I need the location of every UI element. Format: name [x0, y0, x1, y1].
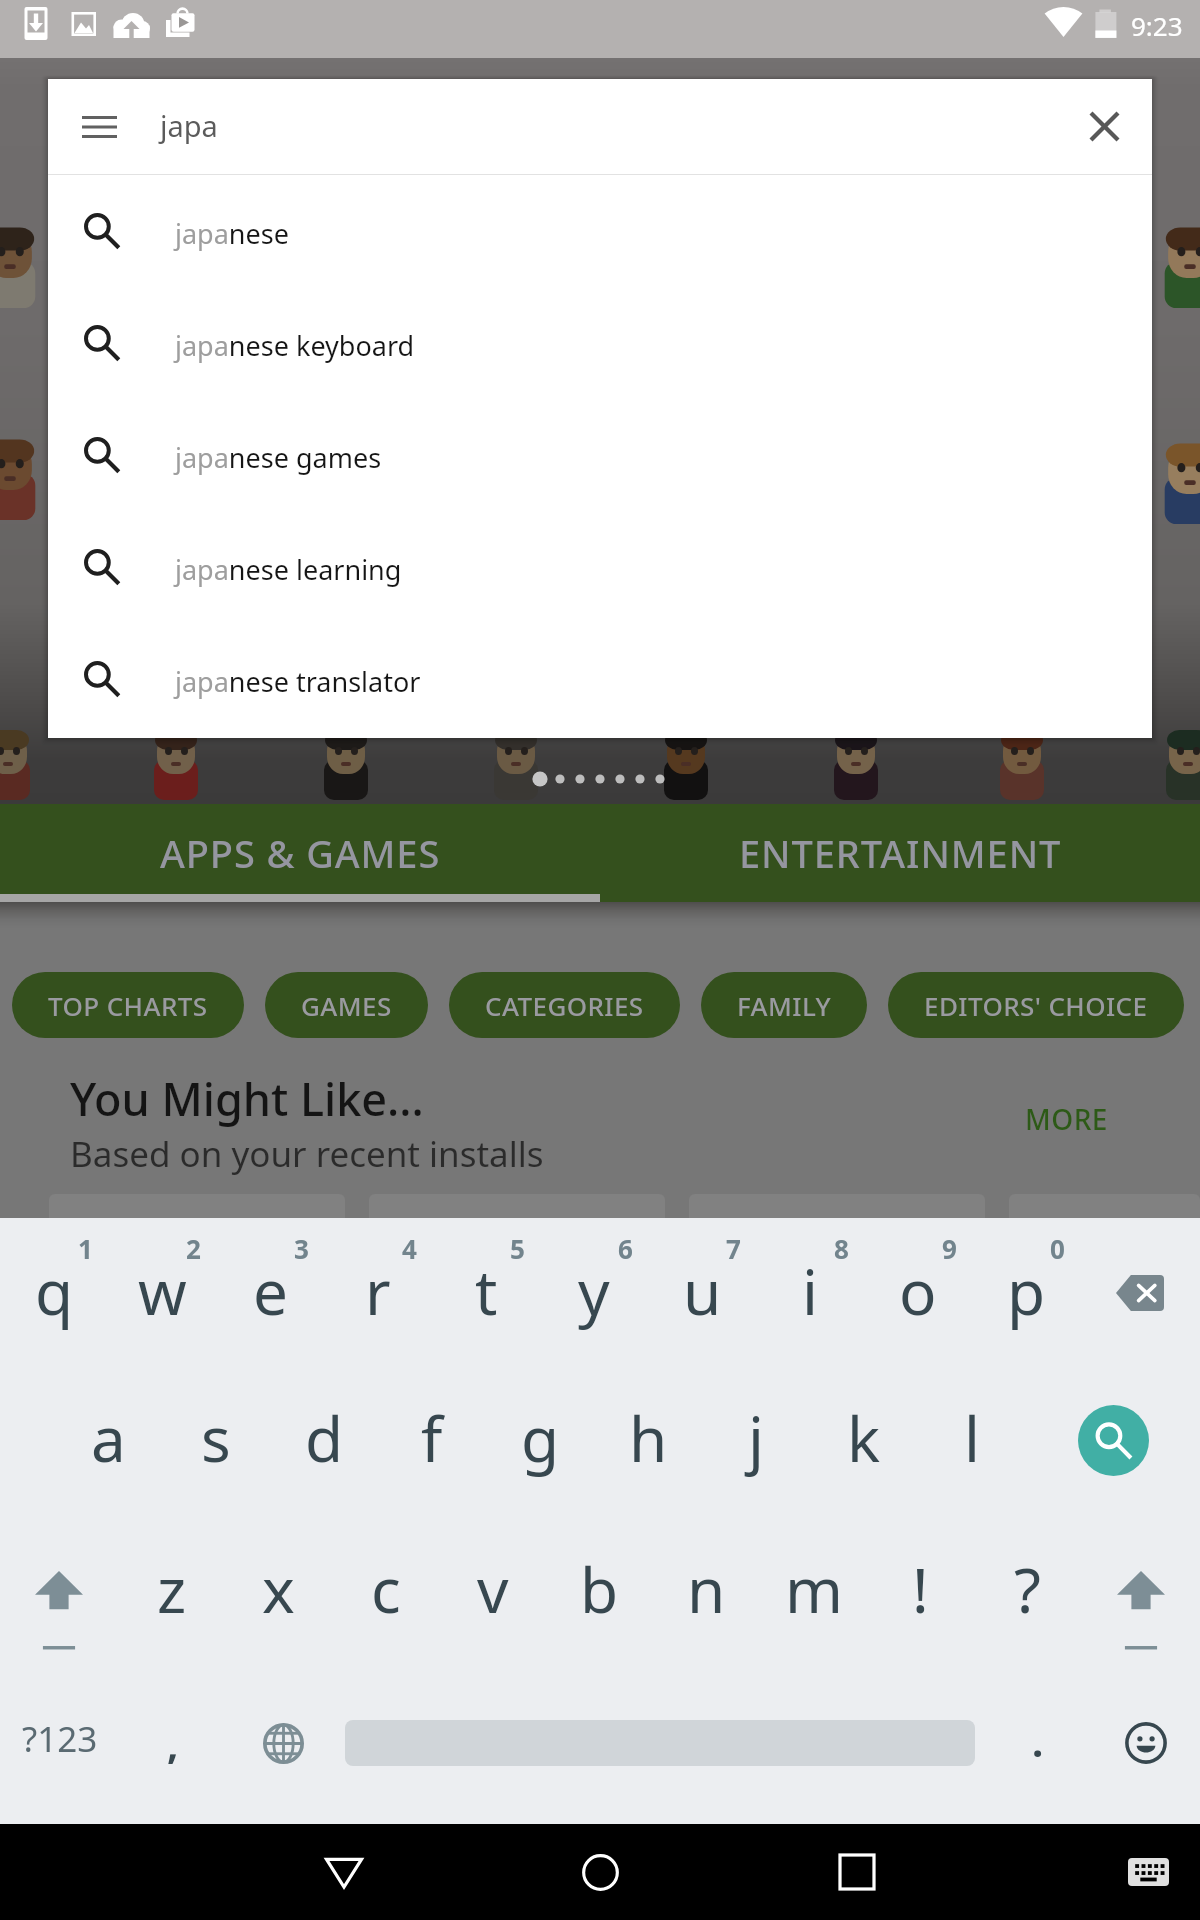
- staticText: ?: [1014, 1547, 1041, 1631]
- staticText: !: [912, 1547, 929, 1631]
- staticText: 9:23: [1131, 8, 1183, 43]
- button[interactable]: c: [332, 1514, 439, 1662]
- button[interactable]: Search: [1026, 1366, 1200, 1514]
- button[interactable]: Clear search: [1057, 79, 1152, 174]
- button[interactable]: v: [439, 1514, 546, 1662]
- button[interactable]: j: [702, 1366, 810, 1514]
- button[interactable]: Open navigation menu: [48, 79, 151, 174]
- button[interactable]: ?123: [0, 1662, 120, 1824]
- button[interactable]: EDITORS' CHOICE: [888, 972, 1184, 1038]
- staticText: m: [785, 1547, 843, 1631]
- staticText: v: [477, 1547, 509, 1631]
- button[interactable]: Change language: [226, 1662, 340, 1824]
- staticText: You Might Like...: [70, 1068, 424, 1129]
- staticText: Based on your recent installs: [70, 1130, 544, 1178]
- button[interactable]: 5: [432, 1218, 540, 1366]
- staticText: 3: [294, 1231, 309, 1266]
- staticText: japanese learning: [175, 551, 402, 588]
- button[interactable]: !: [867, 1514, 974, 1662]
- staticText: h: [629, 1396, 668, 1480]
- button[interactable]: japanese: [48, 175, 1152, 287]
- staticText: d: [305, 1396, 344, 1480]
- staticText: TOP CHARTS: [48, 988, 208, 1023]
- button[interactable]: k: [810, 1366, 918, 1514]
- button[interactable]: Shift: [0, 1514, 118, 1662]
- button[interactable]: 6: [540, 1218, 648, 1366]
- button[interactable]: Space: [340, 1662, 980, 1824]
- staticText: c: [371, 1547, 401, 1631]
- button[interactable]: ?: [974, 1514, 1081, 1662]
- button[interactable]: Switch keyboard: [1088, 1824, 1200, 1920]
- staticText: 8: [834, 1231, 849, 1266]
- button[interactable]: z: [118, 1514, 225, 1662]
- staticText: 7: [726, 1231, 741, 1266]
- button[interactable]: ,: [120, 1662, 226, 1824]
- staticText: b: [580, 1547, 619, 1631]
- button[interactable]: s: [162, 1366, 270, 1514]
- button[interactable]: Emoji: [1091, 1662, 1200, 1824]
- button[interactable]: 4: [324, 1218, 432, 1366]
- button[interactable]: 0: [972, 1218, 1080, 1366]
- button[interactable]: 1: [0, 1218, 108, 1366]
- button[interactable]: 8: [756, 1218, 864, 1366]
- button[interactable]: h: [594, 1366, 702, 1514]
- staticText: x: [262, 1547, 295, 1631]
- staticText: a: [91, 1396, 126, 1480]
- button[interactable]: Recent apps: [781, 1824, 933, 1920]
- staticText: APPS & GAMES: [160, 827, 441, 879]
- staticText: 1: [78, 1231, 93, 1266]
- staticText: l: [964, 1396, 980, 1480]
- button[interactable]: l: [918, 1366, 1026, 1514]
- staticText: 9: [942, 1231, 957, 1266]
- button[interactable]: GAMES: [265, 972, 428, 1038]
- staticText: k: [847, 1396, 881, 1480]
- button[interactable]: 2: [108, 1218, 216, 1366]
- staticText: g: [521, 1396, 560, 1480]
- button[interactable]: 3: [216, 1218, 324, 1366]
- staticText: w: [138, 1249, 187, 1333]
- staticText: MORE: [1025, 1100, 1108, 1138]
- button[interactable]: japanese games: [48, 399, 1152, 511]
- staticText: FAMILY: [737, 988, 831, 1023]
- staticText: ?123: [22, 1715, 98, 1763]
- button[interactable]: ENTERTAINMENT: [600, 804, 1200, 902]
- button[interactable]: g: [486, 1366, 594, 1514]
- staticText: p: [1007, 1249, 1046, 1333]
- staticText: j: [748, 1396, 764, 1480]
- button[interactable]: .: [985, 1662, 1091, 1824]
- staticText: q: [35, 1249, 74, 1333]
- button[interactable]: APPS & GAMES: [0, 804, 600, 902]
- staticText: 2: [186, 1231, 201, 1266]
- button[interactable]: f: [378, 1366, 486, 1514]
- staticText: ENTERTAINMENT: [739, 827, 1062, 879]
- button[interactable]: m: [760, 1514, 867, 1662]
- button[interactable]: Home: [524, 1824, 676, 1920]
- button[interactable]: Shift: [1081, 1514, 1200, 1662]
- button[interactable]: japanese translator: [48, 623, 1152, 735]
- button[interactable]: d: [270, 1366, 378, 1514]
- button[interactable]: x: [225, 1514, 332, 1662]
- button[interactable]: a: [54, 1366, 162, 1514]
- staticText: o: [899, 1249, 937, 1333]
- button[interactable]: Backspace: [1080, 1218, 1200, 1366]
- button[interactable]: 7: [648, 1218, 756, 1366]
- button[interactable]: Back: [268, 1824, 420, 1920]
- button[interactable]: japanese learning: [48, 511, 1152, 623]
- button[interactable]: b: [546, 1514, 653, 1662]
- button[interactable]: CATEGORIES: [449, 972, 680, 1038]
- button[interactable]: FAMILY: [701, 972, 867, 1038]
- staticText: y: [578, 1249, 610, 1333]
- staticText: EDITORS' CHOICE: [924, 988, 1148, 1023]
- staticText: i: [802, 1249, 818, 1333]
- button[interactable]: TOP CHARTS: [12, 972, 244, 1038]
- staticText: japanese translator: [175, 663, 421, 700]
- staticText: japanese keyboard: [175, 327, 415, 364]
- staticText: .: [1032, 1714, 1044, 1768]
- button[interactable]: japanese keyboard: [48, 287, 1152, 399]
- button[interactable]: 9: [864, 1218, 972, 1366]
- staticText: t: [475, 1249, 498, 1333]
- staticText: CATEGORIES: [485, 988, 644, 1023]
- staticText: e: [253, 1249, 288, 1333]
- staticText: GAMES: [301, 988, 392, 1023]
- button[interactable]: n: [653, 1514, 760, 1662]
